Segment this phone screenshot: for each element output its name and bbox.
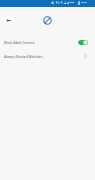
staticText: 100% xyxy=(69,1,75,4)
staticText: Always Blocked Websites xyxy=(4,54,43,58)
button[interactable]: Back xyxy=(3,15,14,26)
staticText: Block Adult Content xyxy=(4,40,35,44)
button[interactable]: Blocked content xyxy=(41,14,53,26)
staticText: 17:16 xyxy=(81,1,87,4)
button[interactable]: Always Blocked Websites xyxy=(0,49,95,63)
button[interactable]: Block adult content toggle xyxy=(78,40,88,45)
button[interactable]: Block Adult Content xyxy=(0,35,95,49)
